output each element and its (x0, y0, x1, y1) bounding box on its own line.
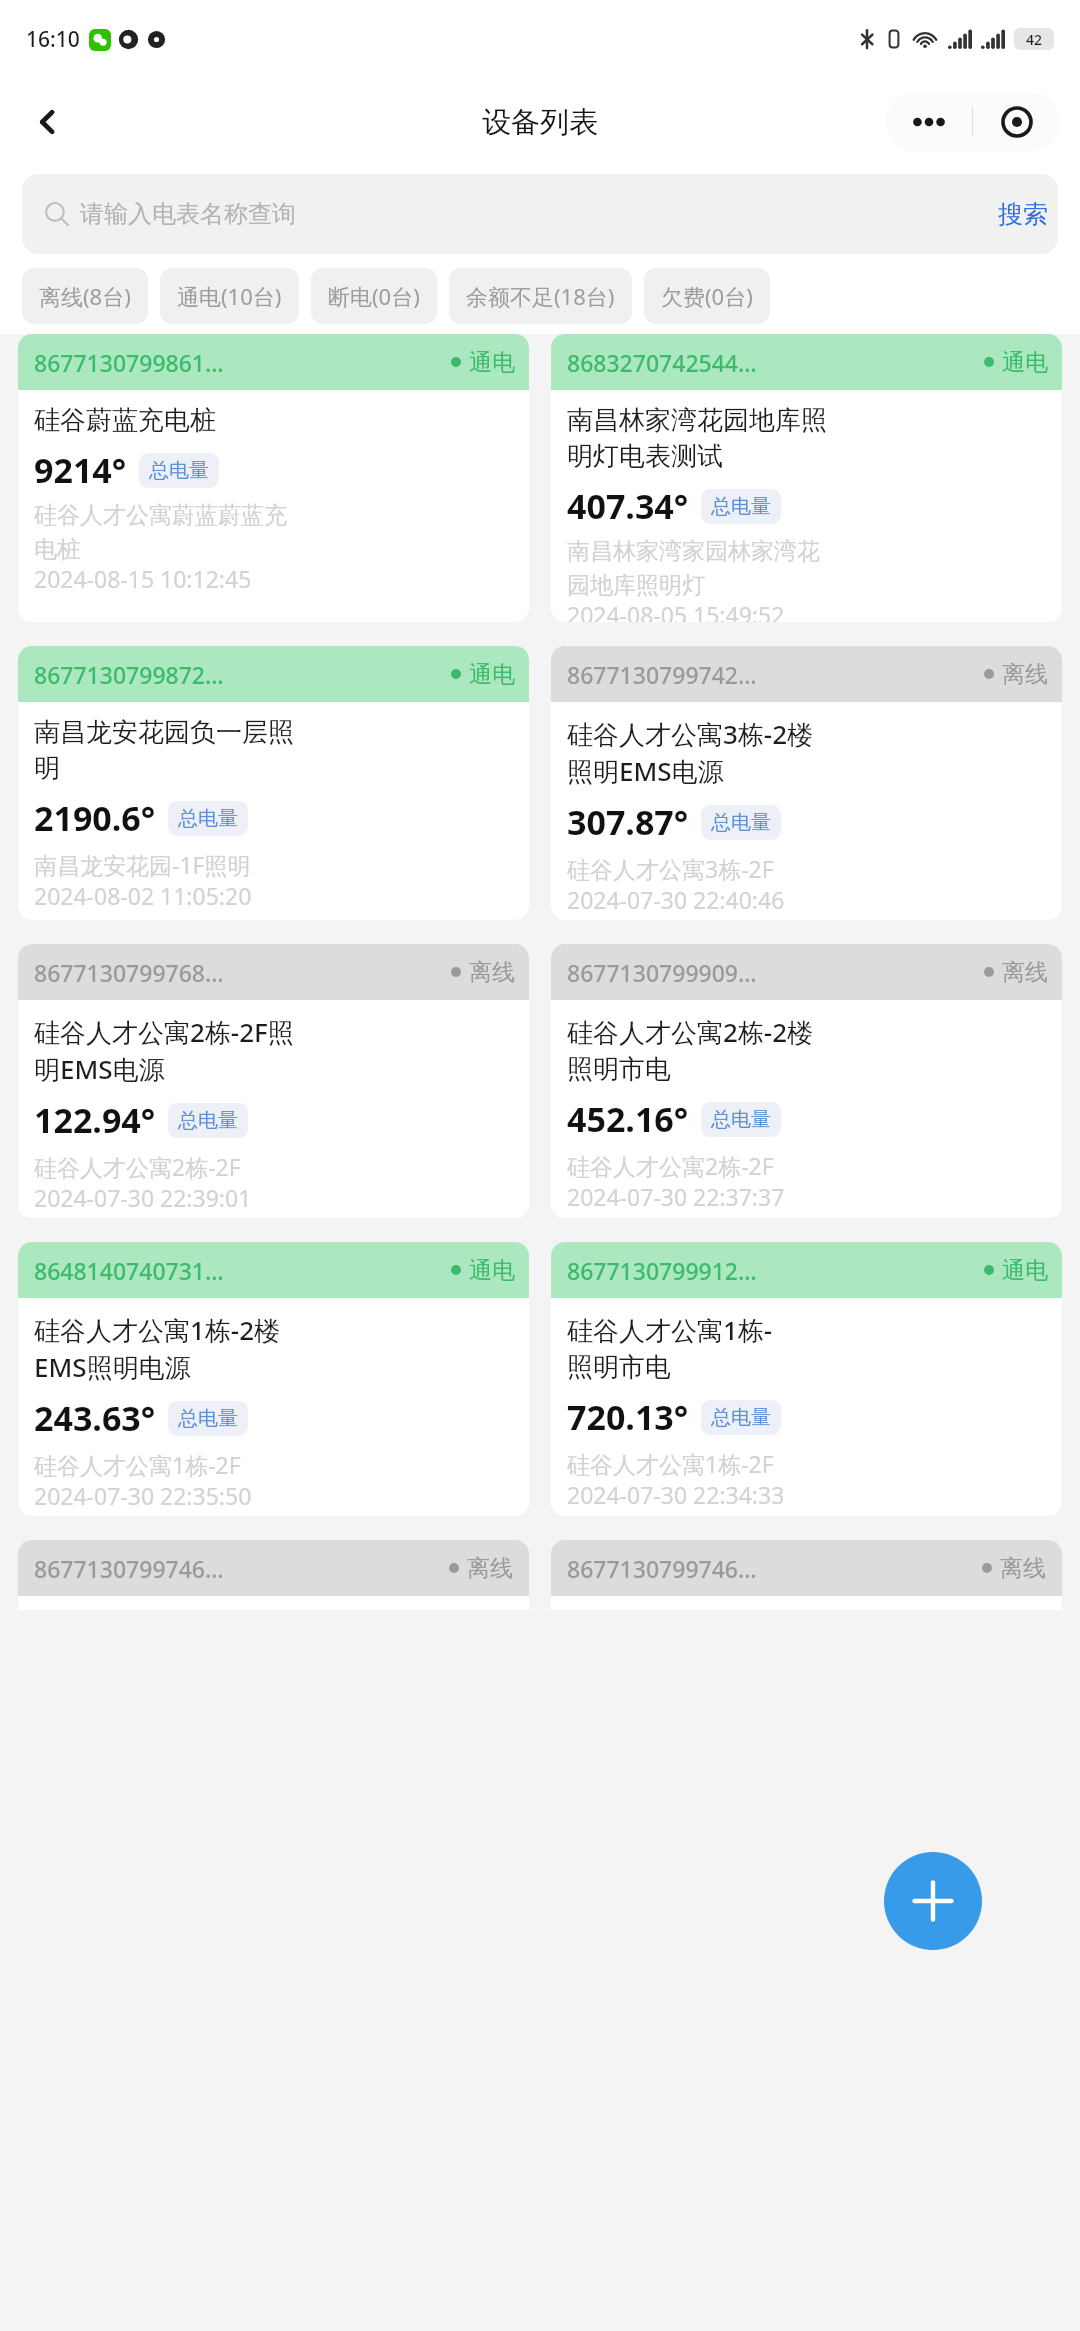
staticText: 122.94° (34, 1097, 156, 1143)
button[interactable]: 8683270742544… (551, 334, 1062, 622)
button[interactable]: 离线(8台) (22, 268, 148, 324)
staticText: 请输入电表名称查询 (80, 199, 296, 229)
staticText: 总电量 (711, 1107, 771, 1132)
button[interactable]: 8648140740731… (18, 1242, 529, 1516)
staticText: 离线(8台) (39, 281, 131, 311)
button[interactable]: 8677130799912… (551, 1242, 1062, 1516)
staticText: 硅谷人才公寓蔚蓝蔚蓝充 电桩 (34, 501, 287, 563)
staticText: 2024-08-05 15:49:52 (567, 599, 785, 622)
button[interactable]: 8677130799861… (18, 334, 529, 622)
staticText: 硅谷人才公寓2栋-2F (34, 1151, 241, 1182)
staticText: 搜索 (998, 199, 1048, 230)
staticText: 8677130799912… (567, 1255, 978, 1286)
staticText: 通电(10台) (177, 281, 282, 311)
staticText: 2024-07-30 22:35:50 (34, 1480, 252, 1511)
staticText: 总电量 (178, 1108, 238, 1133)
button[interactable]: 断电(0台) (311, 268, 437, 324)
staticText: 2024-07-30 22:34:33 (567, 1479, 785, 1510)
staticText: 总电量 (711, 494, 771, 519)
staticText: 硅谷人才公寓1栋-2楼 EMS照明电源 (34, 1312, 281, 1385)
staticText: 2190.6° (34, 795, 156, 841)
button[interactable]: More (886, 92, 972, 152)
button[interactable]: 通电(10台) (160, 268, 299, 324)
staticText: 通电 (1002, 1256, 1048, 1285)
staticText: 离线 (1002, 660, 1048, 689)
staticText: 离线 (1002, 958, 1048, 987)
staticText: 硅谷人才公寓1栋- 照明市电 (567, 1312, 773, 1384)
staticText: 452.16° (567, 1096, 689, 1142)
button[interactable]: Close (973, 92, 1060, 152)
staticText: 8683270742544… (567, 347, 978, 378)
staticText: 2024-07-30 22:37:37 (567, 1181, 785, 1212)
staticText: 42 (1026, 30, 1043, 49)
button[interactable]: 8677130799909… (551, 944, 1062, 1218)
staticText: 2024-08-15 10:12:45 (34, 563, 252, 594)
staticText: 南昌龙安花园-1F照明 (34, 849, 251, 880)
staticText: 8677130799742… (567, 659, 978, 690)
button[interactable]: 8677130799746… (551, 1540, 1062, 1610)
staticText: 硅谷人才公寓1栋-2F (34, 1449, 241, 1480)
staticText: 总电量 (149, 458, 209, 483)
staticText: 8648140740731… (34, 1255, 445, 1286)
staticText: 离线 (467, 1554, 513, 1583)
staticText: 2024-07-30 22:39:01 (34, 1182, 252, 1213)
button[interactable]: 欠费(0台) (644, 268, 770, 324)
staticText: 南昌林家湾家园林家湾花 园地库照明灯 (567, 537, 820, 599)
button[interactable]: 搜索 (992, 189, 1054, 240)
button[interactable]: 请输入电表名称查询 (22, 174, 1058, 254)
staticText: 硅谷人才公寓2栋-2F照 明EMS电源 (34, 1014, 294, 1087)
staticText: 总电量 (178, 1406, 238, 1431)
staticText: 8677130799861… (34, 347, 445, 378)
staticText: 8677130799746… (567, 1553, 982, 1584)
staticText: 总电量 (711, 1405, 771, 1430)
staticText: 硅谷蔚蓝充电桩 (34, 404, 216, 437)
staticText: 通电 (469, 1256, 515, 1285)
staticText: 8677130799872… (34, 659, 445, 690)
staticText: 通电 (469, 348, 515, 377)
staticText: 9214° (34, 447, 127, 493)
staticText: 720.13° (567, 1394, 689, 1440)
staticText: 欠费(0台) (661, 281, 753, 311)
staticText: 307.87° (567, 799, 689, 845)
button[interactable]: 8677130799768… (18, 944, 529, 1218)
staticText: 南昌龙安花园负一层照 明 (34, 716, 294, 785)
staticText: 407.34° (567, 483, 689, 529)
button[interactable]: Add (884, 1852, 982, 1950)
staticText: 硅谷人才公寓2栋-2楼 照明市电 (567, 1014, 814, 1086)
staticText: 南昌林家湾花园地库照 明灯电表测试 (567, 404, 827, 473)
staticText: 通电 (469, 660, 515, 689)
staticText: 16:10 (26, 25, 80, 54)
staticText: 设备列表 (482, 104, 598, 141)
staticText: 硅谷人才公寓1栋-2F (567, 1448, 774, 1479)
button[interactable]: 余额不足(18台) (449, 268, 632, 324)
staticText: 总电量 (711, 810, 771, 835)
staticText: 8677130799909… (567, 957, 978, 988)
staticText: 8677130799746… (34, 1553, 449, 1584)
button[interactable]: 8677130799872… (18, 646, 529, 920)
staticText: 硅谷人才公寓3栋-2楼 照明EMS电源 (567, 716, 814, 789)
staticText: 通电 (1002, 348, 1048, 377)
staticText: 总电量 (178, 806, 238, 831)
staticText: 8677130799768… (34, 957, 445, 988)
staticText: 2024-08-02 11:05:20 (34, 880, 252, 911)
button[interactable]: 8677130799742… (551, 646, 1062, 920)
staticText: 243.63° (34, 1395, 156, 1441)
staticText: 离线 (469, 958, 515, 987)
button[interactable]: 8677130799746… (18, 1540, 529, 1610)
staticText: 离线 (1000, 1554, 1046, 1583)
staticText: 硅谷人才公寓3栋-2F (567, 853, 774, 884)
staticText: 硅谷人才公寓2栋-2F (567, 1150, 774, 1181)
staticText: 余额不足(18台) (466, 281, 615, 311)
staticText: 断电(0台) (328, 281, 420, 311)
staticText: 2024-07-30 22:40:46 (567, 884, 785, 915)
button[interactable]: Back (20, 94, 76, 150)
